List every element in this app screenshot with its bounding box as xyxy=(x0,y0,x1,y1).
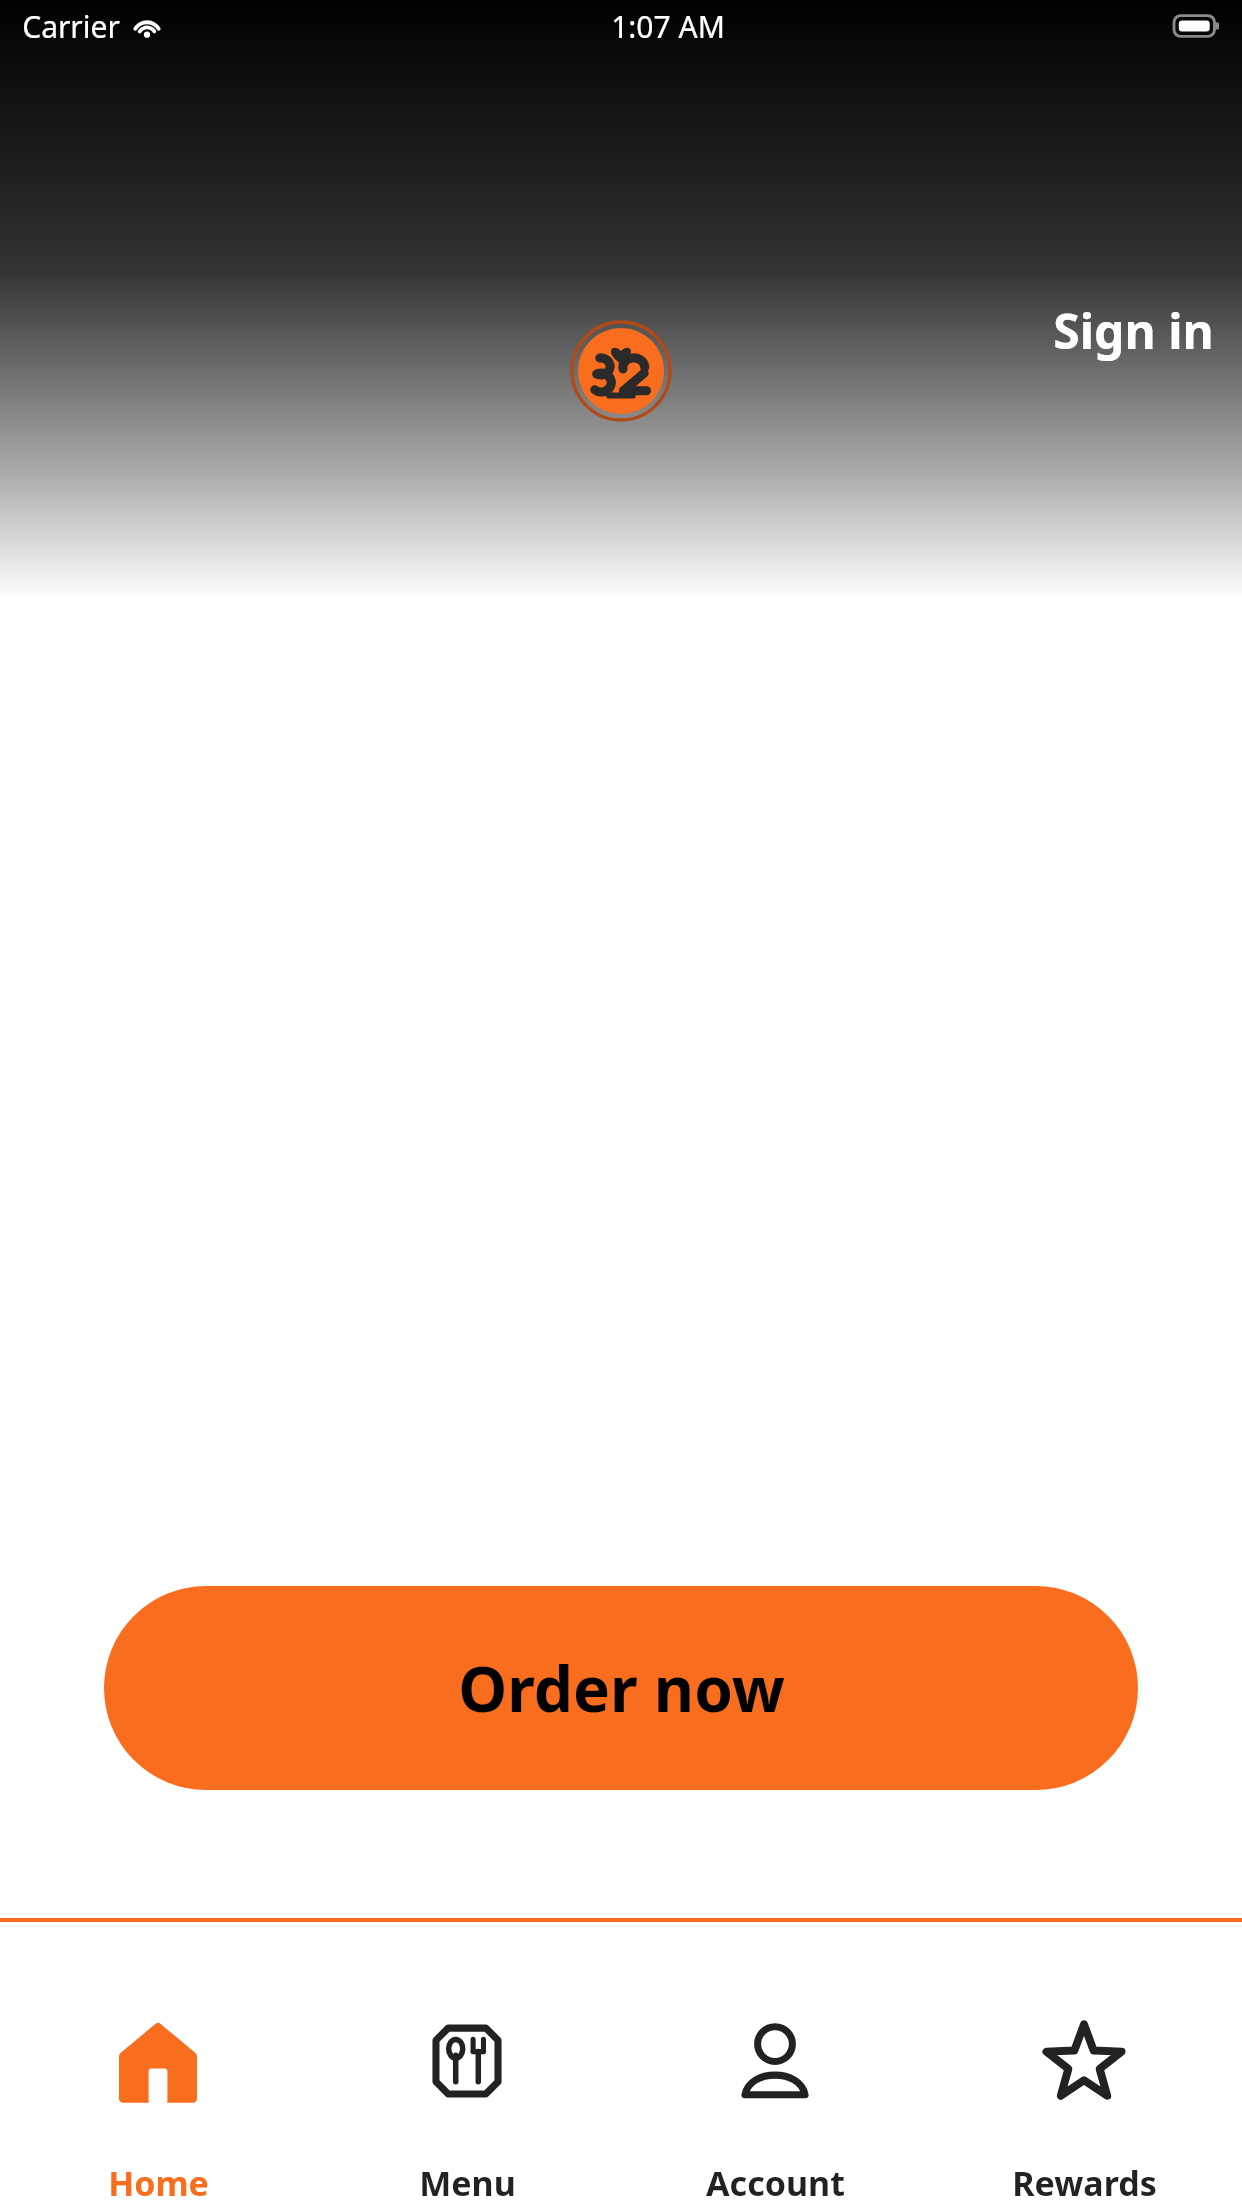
staticText: Rewards xyxy=(1012,2160,1157,2206)
button[interactable]: Account xyxy=(625,1922,925,2206)
button[interactable]: Rewards xyxy=(934,1922,1234,2206)
staticText: Sign in xyxy=(1053,298,1214,363)
button[interactable]: Menu xyxy=(317,1922,617,2206)
button[interactable]: Sign in xyxy=(1025,288,1242,373)
staticText: Carrier xyxy=(22,6,120,47)
button[interactable]: Home xyxy=(8,1922,308,2206)
staticText: Account xyxy=(706,2160,845,2206)
staticText: 1:07 AM xyxy=(611,6,725,47)
button[interactable]: 32 logo xyxy=(572,322,670,420)
button[interactable]: Order now xyxy=(104,1586,1138,1790)
staticText: Order now xyxy=(458,1646,785,1730)
staticText: Home xyxy=(108,2160,209,2206)
staticText: Menu xyxy=(419,2160,516,2206)
